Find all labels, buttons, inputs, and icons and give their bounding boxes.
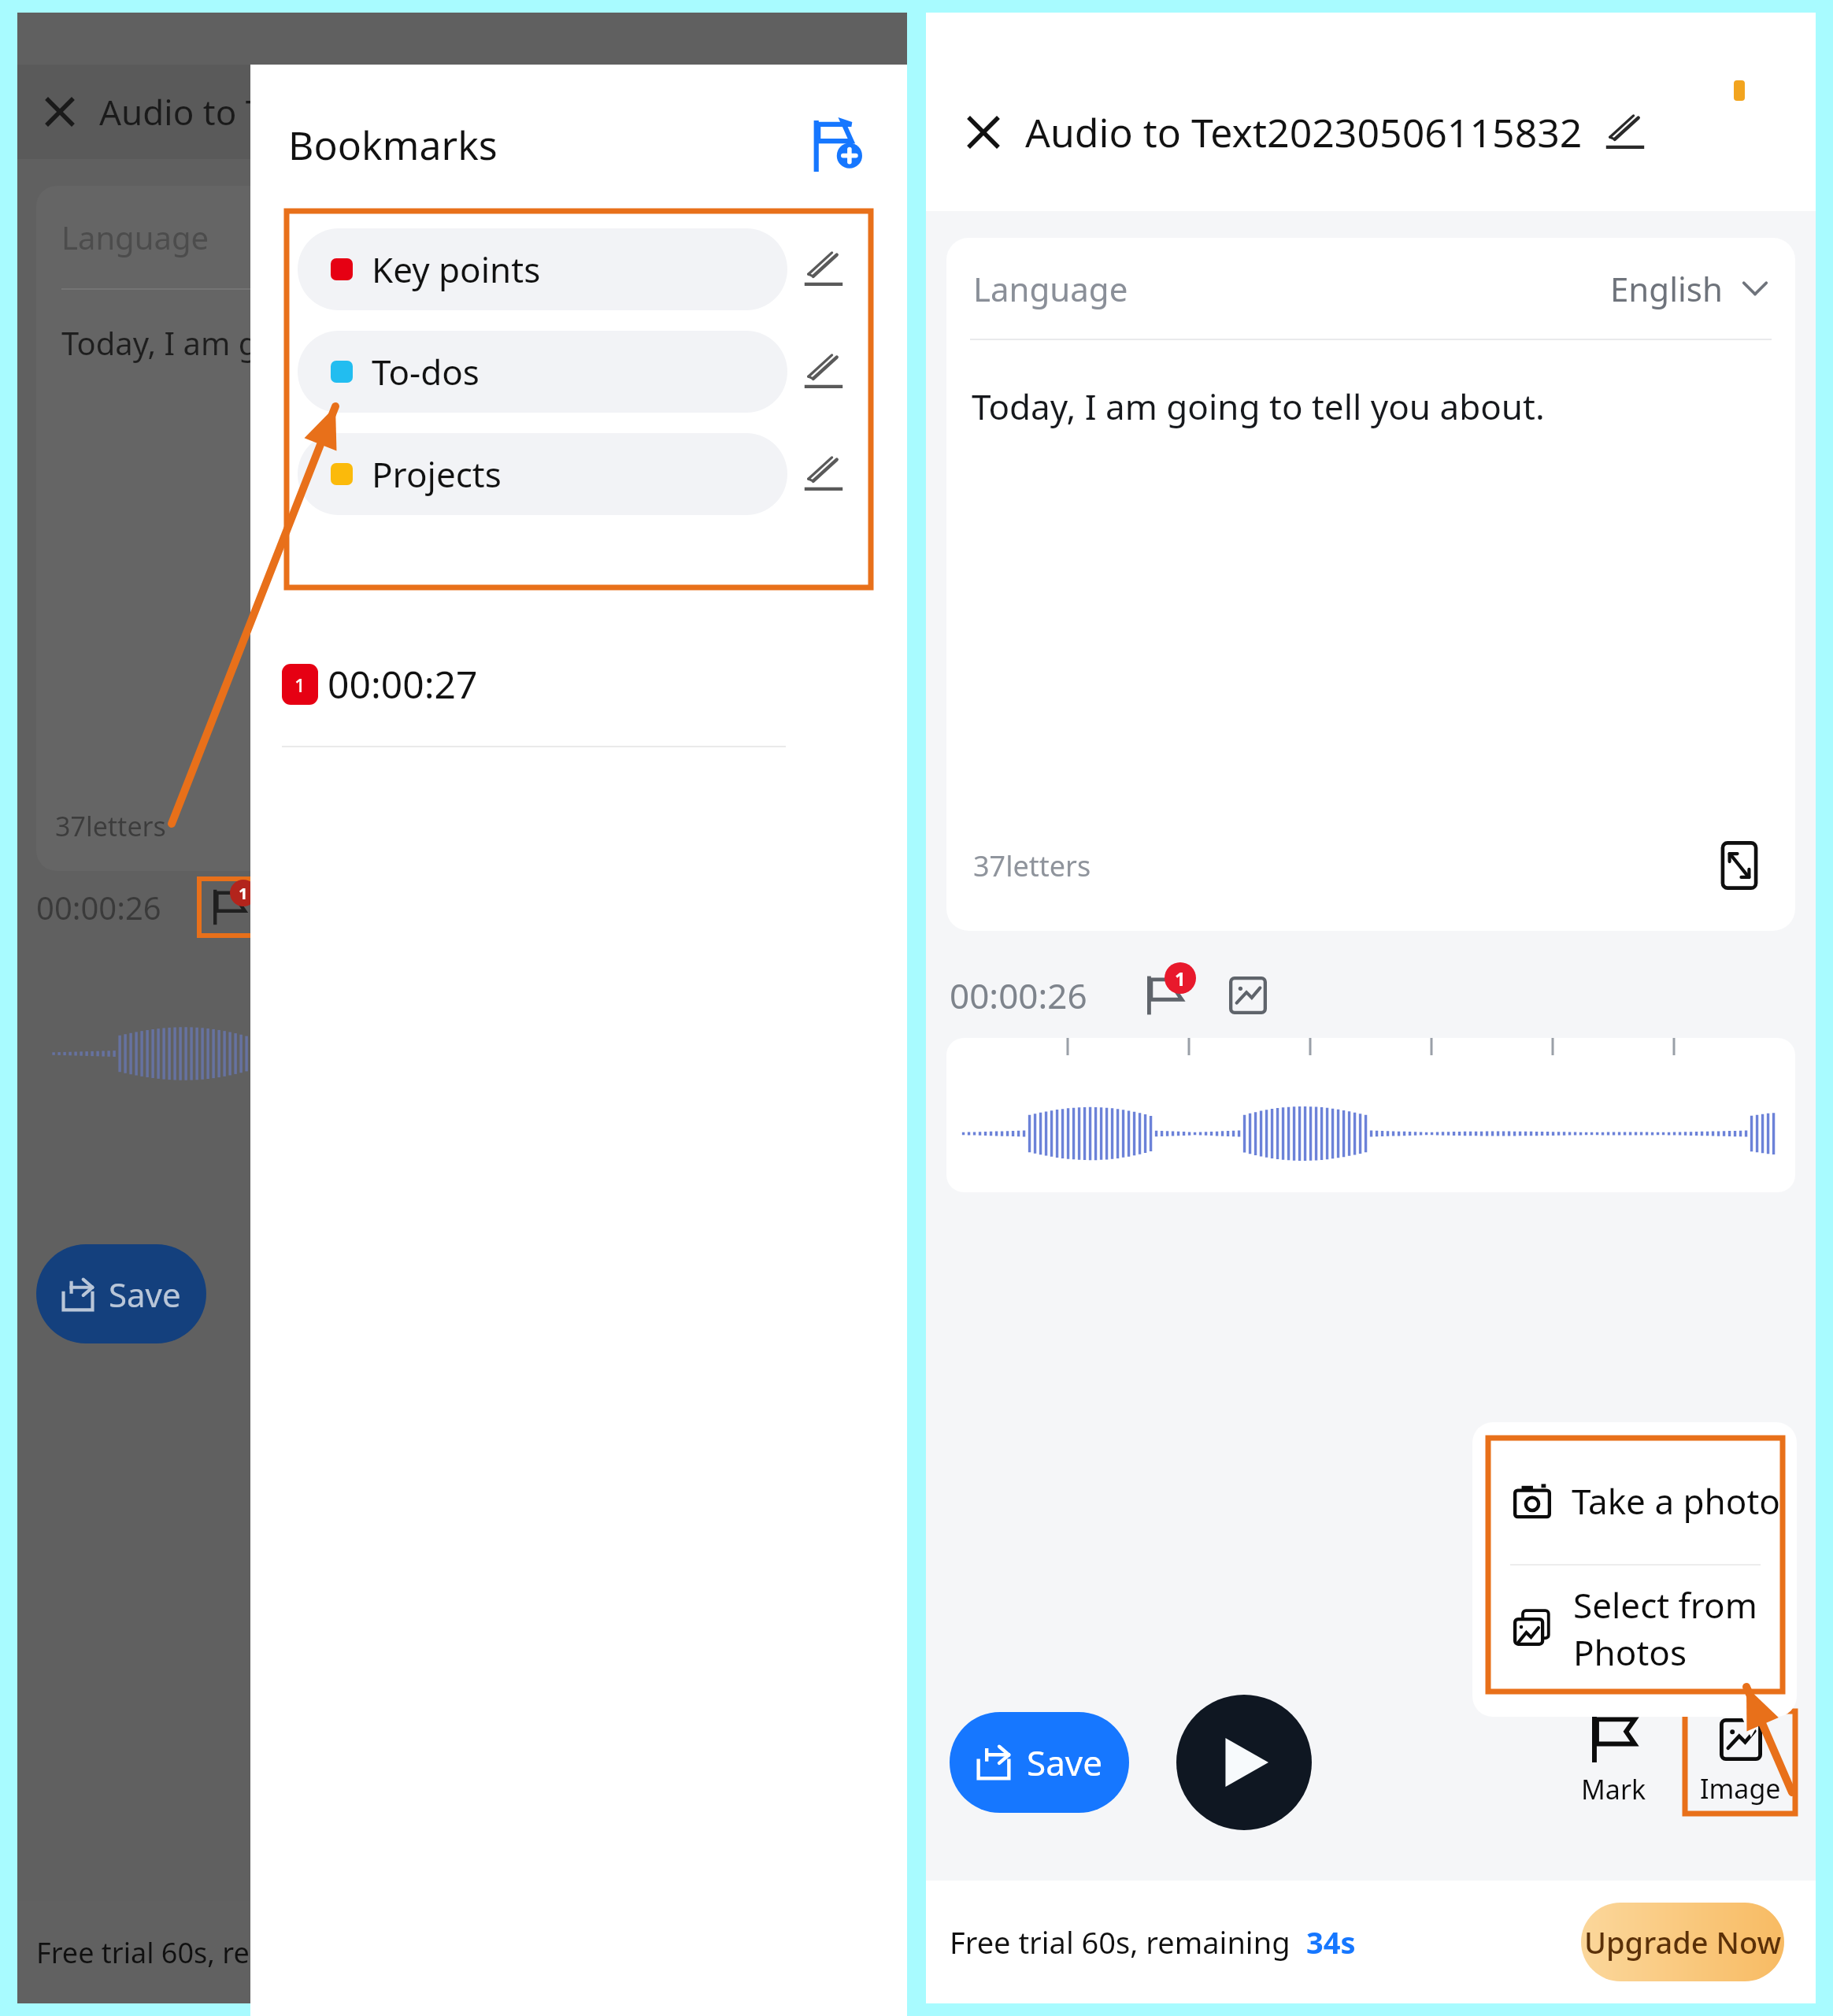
staticText: Projects (372, 450, 502, 498)
staticText: Take a photo (1572, 1477, 1780, 1525)
staticText: Mark (1581, 1771, 1646, 1807)
button[interactable]: Key points (298, 228, 787, 310)
button[interactable]: Projects (298, 433, 787, 515)
staticText: Select from Photos (1573, 1581, 1783, 1676)
button[interactable]: Select from Photos (1488, 1566, 1783, 1692)
staticText: Save (1027, 1739, 1103, 1786)
staticText: Free trial 60s, remaining (36, 1933, 374, 1972)
staticText: Key points (372, 246, 541, 293)
button[interactable]: Edit To-dos (787, 335, 860, 408)
staticText: 37letters (973, 847, 1091, 885)
button[interactable]: Mark (1554, 1718, 1672, 1807)
button[interactable]: Play (1176, 1695, 1312, 1830)
button[interactable]: Rename (1600, 107, 1650, 157)
button[interactable]: Expand (1710, 836, 1768, 895)
staticText: To-dos (372, 348, 480, 395)
button[interactable]: Image (1685, 1711, 1795, 1814)
button[interactable]: Edit Projects (787, 438, 860, 510)
staticText: Save (109, 1272, 181, 1317)
staticText: 1 (1175, 965, 1186, 991)
staticText: 1 (239, 883, 248, 904)
button[interactable]: Upgrade Now (1581, 1903, 1784, 1981)
button[interactable]: Save (950, 1712, 1129, 1813)
button[interactable]: Add bookmark (806, 113, 869, 176)
staticText: Upgrade Now (1584, 1921, 1782, 1962)
button[interactable]: Edit Key points (787, 233, 860, 306)
staticText: Free trial 60s, remaining (950, 1921, 1306, 1962)
staticText: 00:00:26 (950, 972, 1087, 1019)
button[interactable]: Take a photo (1488, 1438, 1783, 1564)
staticText: Audio to Text2023 (99, 88, 391, 135)
staticText: 34s (1306, 1921, 1356, 1962)
staticText: English (1610, 266, 1723, 311)
button[interactable]: Close (953, 102, 1014, 163)
staticText: Language (61, 216, 209, 258)
button[interactable]: To-dos (298, 331, 787, 413)
staticText: 00:00:27 (328, 658, 478, 710)
staticText: Image (1700, 1770, 1781, 1807)
staticText: Audio to Text20230506115832 (1025, 106, 1583, 159)
staticText: 00:00:26 (36, 886, 161, 928)
button[interactable]: Marks (1131, 962, 1198, 1028)
staticText: Language (973, 266, 1128, 311)
staticText: Today, I am going to tell you about. (61, 321, 583, 364)
staticText: 37letters (55, 808, 166, 844)
staticText: 1 (294, 672, 305, 698)
button[interactable]: Language (973, 238, 1768, 339)
staticText: Bookmarks (288, 118, 498, 172)
staticText: Today, I am going to tell you about. (972, 383, 1545, 430)
button[interactable]: Images (1215, 962, 1281, 1028)
